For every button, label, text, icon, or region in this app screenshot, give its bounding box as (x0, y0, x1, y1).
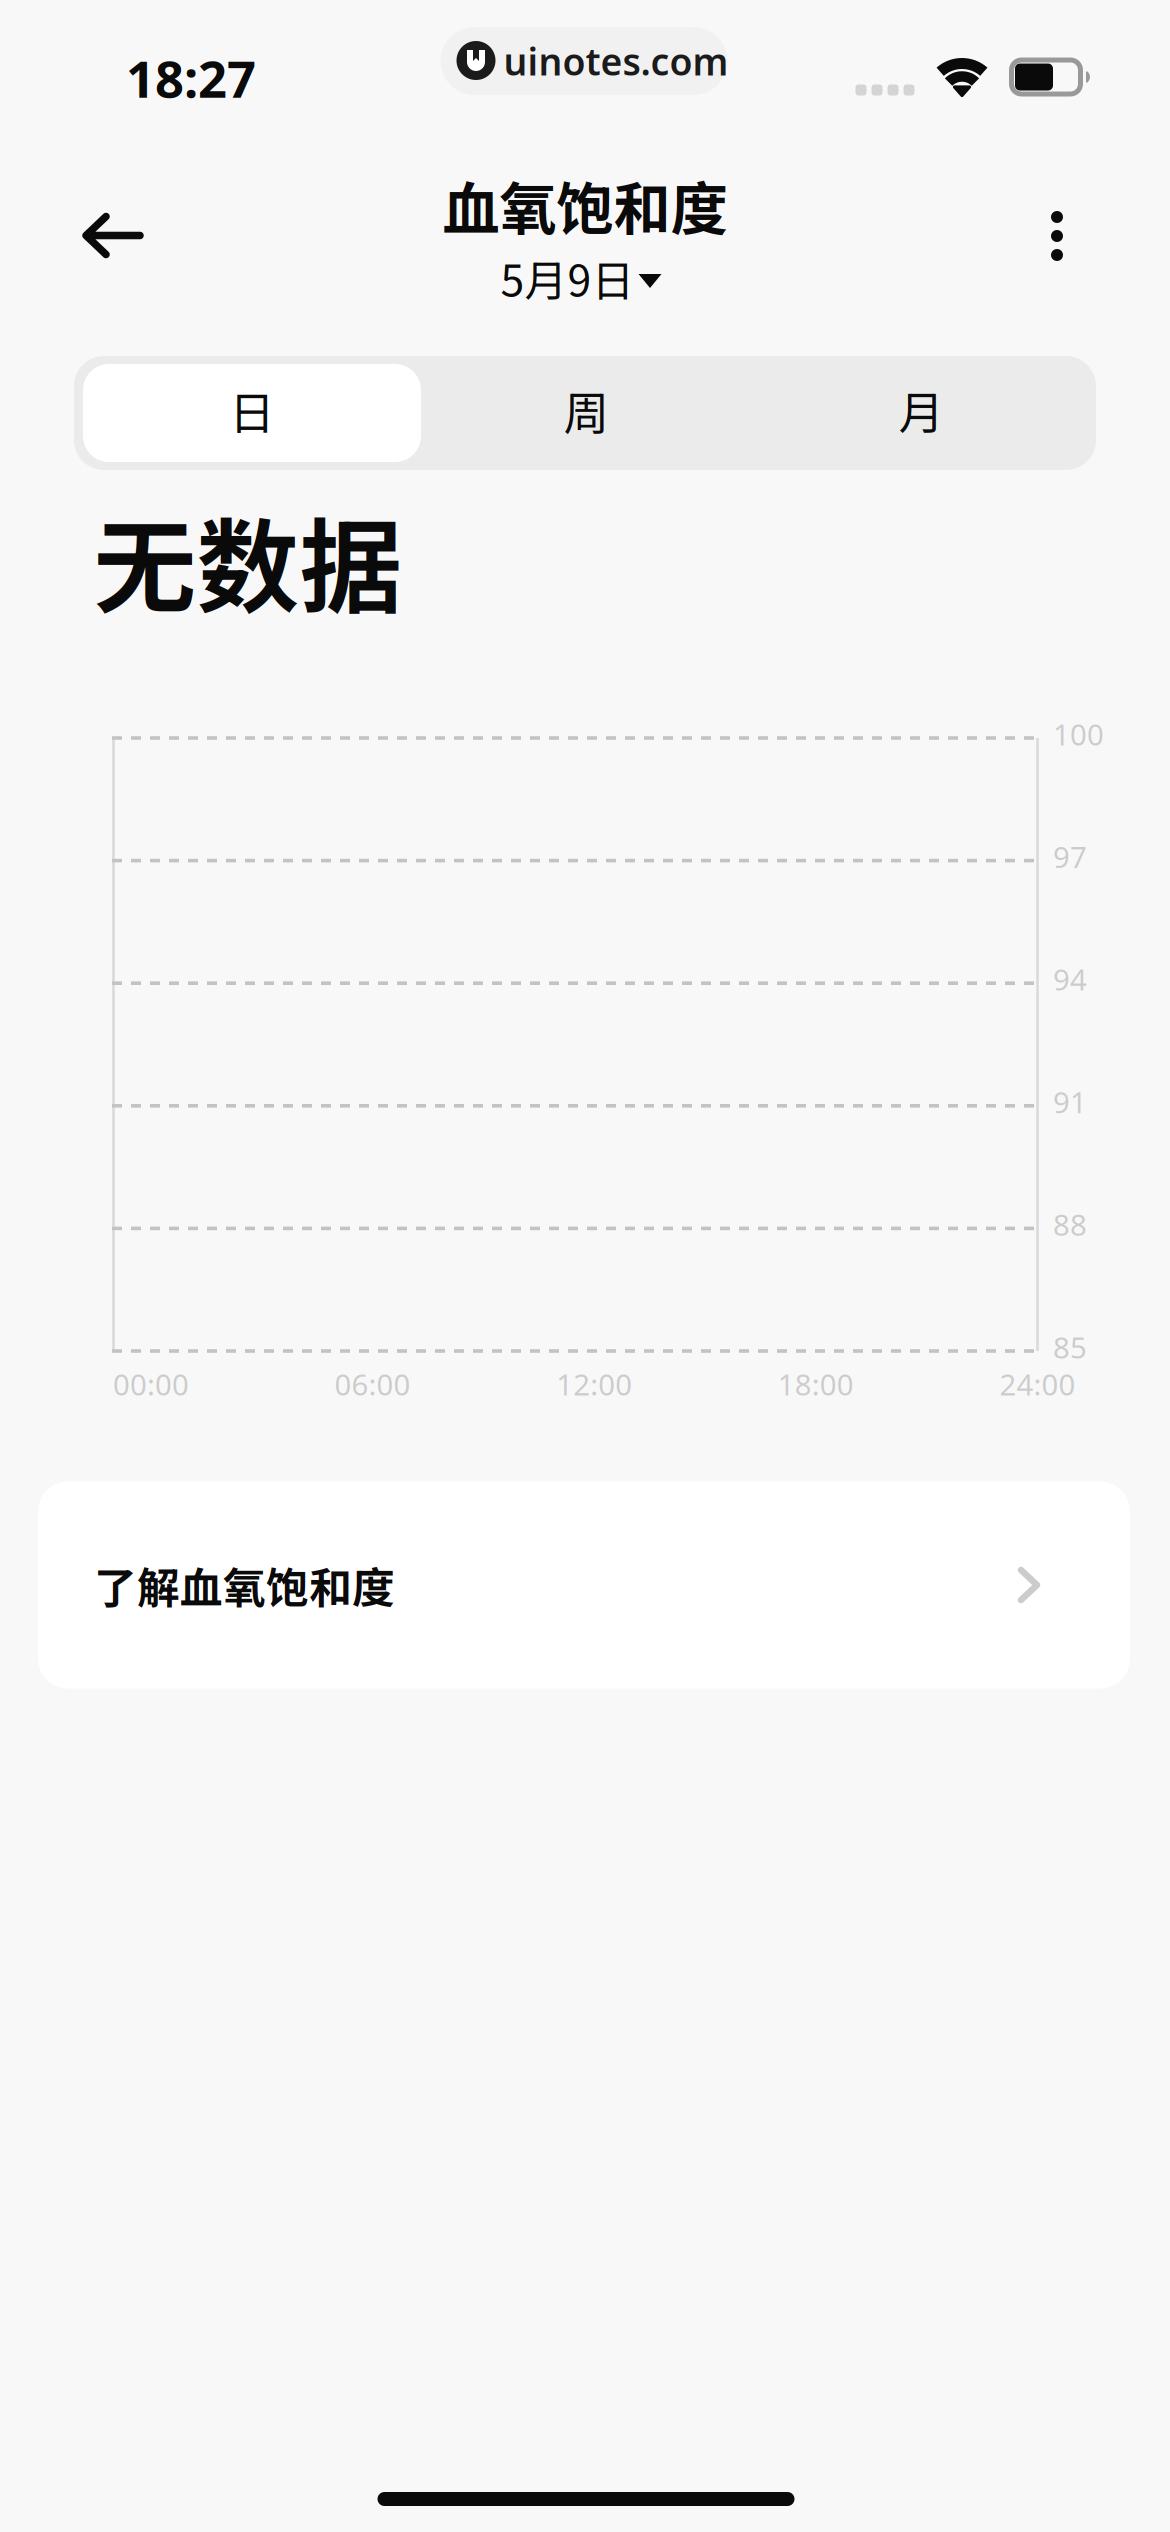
staticText: 18:00 (778, 1364, 854, 1403)
button[interactable]: More options (997, 171, 1117, 301)
staticText: 无数据 (93, 486, 402, 634)
staticText: 日 (229, 377, 274, 443)
staticText: 91 (1053, 1082, 1087, 1121)
staticText: 88 (1053, 1205, 1087, 1244)
staticText: 血氧饱和度 (442, 163, 727, 246)
staticText: 94 (1053, 960, 1087, 999)
staticText: 5月9日 (500, 247, 634, 309)
staticText: 了解血氧饱和度 (94, 1554, 395, 1616)
staticText: 00:00 (113, 1364, 189, 1403)
staticText: 月 (898, 377, 943, 443)
staticText: 97 (1053, 837, 1087, 876)
staticText: 周 (563, 377, 608, 443)
button[interactable]: Back (48, 171, 178, 301)
staticText: 100 (1053, 714, 1104, 753)
staticText: 24:00 (999, 1364, 1075, 1403)
button[interactable]: 月 (751, 356, 1091, 464)
staticText: 06:00 (335, 1364, 411, 1403)
button[interactable]: 了解血氧饱和度 (38, 1481, 1130, 1688)
staticText: uinotes.com (503, 36, 728, 86)
staticText: 85 (1053, 1327, 1087, 1366)
button[interactable]: 周 (416, 356, 756, 464)
staticText: 12:00 (556, 1364, 632, 1403)
button[interactable]: 日 (82, 356, 422, 464)
staticText: 18:27 (126, 44, 256, 112)
